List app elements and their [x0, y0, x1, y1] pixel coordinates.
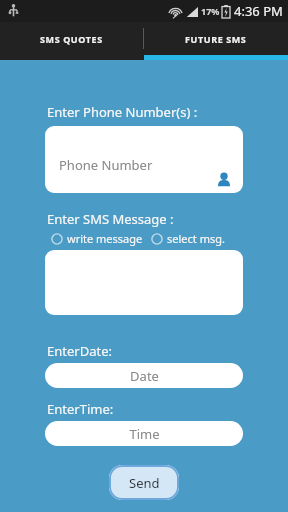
button[interactable] — [45, 250, 243, 315]
staticText: 4:36 PM — [234, 2, 283, 20]
button[interactable]: FUTURE SMS — [144, 22, 288, 55]
staticText: select msg. — [167, 231, 225, 246]
button[interactable]: Pick contact — [216, 171, 232, 187]
staticText: EnterTime: — [47, 400, 114, 418]
staticText: Phone Number — [59, 156, 153, 174]
staticText: Date — [130, 367, 159, 385]
button[interactable]: select msg. — [151, 231, 225, 246]
button[interactable]: Send — [109, 465, 179, 500]
button[interactable]: SMS QUOTES — [0, 22, 143, 55]
staticText: 17% — [201, 5, 220, 17]
staticText: SMS QUOTES — [40, 33, 103, 45]
staticText: Enter Phone Number(s) : — [47, 103, 198, 121]
button[interactable]: Phone Number — [45, 126, 243, 193]
staticText: write message — [67, 231, 143, 246]
button[interactable]: Date — [45, 363, 243, 388]
staticText: EnterDate: — [47, 342, 112, 360]
button[interactable]: write message — [51, 231, 143, 246]
staticText: Send — [129, 474, 160, 492]
staticText: Enter SMS Message : — [47, 210, 174, 228]
button[interactable]: Time — [45, 421, 243, 446]
staticText: Time — [129, 425, 160, 443]
staticText: FUTURE SMS — [185, 33, 247, 45]
